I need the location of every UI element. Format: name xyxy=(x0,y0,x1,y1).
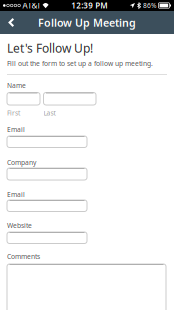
button[interactable]: Comments xyxy=(7,264,166,310)
staticText: Comments xyxy=(7,252,40,261)
button[interactable]: First name xyxy=(7,92,40,105)
staticText: Website xyxy=(7,221,32,230)
staticText: 12:39 PM xyxy=(71,0,107,11)
staticText: Follow Up Meeting xyxy=(38,15,136,30)
staticText: 86% xyxy=(141,1,157,10)
staticText: Email xyxy=(7,125,25,134)
staticText: Company xyxy=(7,158,36,167)
staticText: First xyxy=(7,109,20,117)
staticText: Let's Follow Up! xyxy=(7,40,93,56)
button[interactable]: Website xyxy=(7,232,87,243)
staticText: Email xyxy=(7,190,25,199)
button[interactable]: Email xyxy=(7,200,87,211)
staticText: Fill out the form to set up a follow up … xyxy=(7,59,153,68)
staticText: Last xyxy=(43,109,55,117)
button[interactable]: Company xyxy=(7,168,87,180)
staticText: AT&T xyxy=(20,0,40,11)
button[interactable]: Email xyxy=(7,136,87,147)
button[interactable]: Back xyxy=(0,11,23,34)
staticText: Name xyxy=(7,81,26,90)
button[interactable]: Last name xyxy=(43,92,96,105)
